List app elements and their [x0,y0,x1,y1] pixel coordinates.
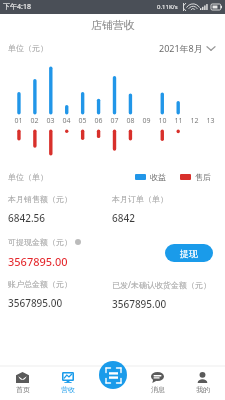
staticText: 我的 [196,385,210,394]
button[interactable]: 扫一扫 [99,361,127,389]
button[interactable]: 说明 [75,239,81,245]
staticText: 可提现金额（元） [8,237,72,247]
staticText: 售后 [195,172,211,182]
staticText: 店铺营收 [91,18,135,32]
button[interactable]: 消息 [135,366,180,400]
staticText: 12 [190,116,199,126]
staticText: 02 [30,116,39,126]
button[interactable]: 我的 [180,366,225,400]
staticText: 提现 [180,248,198,259]
staticText: 6842.56 [8,211,46,225]
staticText: 下午4:18 [3,2,31,12]
button[interactable]: 营收 [45,366,90,400]
staticText: 01 [14,116,23,126]
staticText: 07 [110,116,119,126]
staticText: 09 [142,116,151,126]
staticText: 2021年8月 [159,42,203,54]
staticText: 本月销售额（元） [8,194,72,204]
staticText: 13 [206,116,215,126]
button[interactable]: 2021年8月 [157,40,217,56]
button[interactable]: 首页 [0,366,45,400]
staticText: 本月订单（单） [112,194,168,204]
staticText: 11 [174,116,183,126]
staticText: 6842 [112,211,135,225]
staticText: 03 [46,116,55,126]
staticText: 3567895.00 [112,297,167,311]
staticText: 06 [94,116,103,126]
staticText: 消息 [151,385,165,394]
staticText: 3567895.00 [8,296,63,310]
staticText: 10 [158,116,167,126]
staticText: 账户总金额（元） [8,279,72,289]
staticText: 单位（单） [8,172,48,182]
button[interactable]: 提现 [165,244,213,262]
staticText: 收益 [150,172,166,182]
staticText: 0.11K/s [157,3,178,11]
staticText: 已发/未确认收货金额（元） [112,279,211,290]
staticText: 08 [126,116,135,126]
staticText: 营收 [61,385,75,394]
staticText: 单位（元） [8,43,48,53]
staticText: 3567895.00 [8,254,68,269]
staticText: 05 [78,116,87,126]
staticText: 04 [62,116,71,126]
staticText: 首页 [16,385,30,394]
